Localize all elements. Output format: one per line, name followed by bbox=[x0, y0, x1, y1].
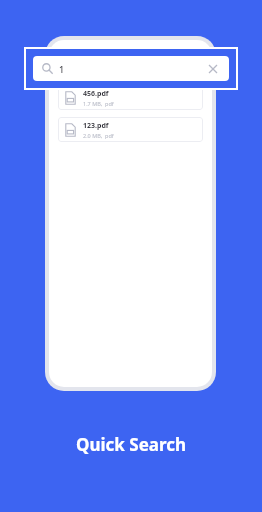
staticText: 1 bbox=[59, 63, 65, 75]
button[interactable]: Clear search bbox=[205, 61, 220, 76]
staticText: 2.0 MB, pdf bbox=[83, 132, 114, 139]
staticText: 123.pdf bbox=[83, 121, 109, 131]
button[interactable]: 123.pdf bbox=[58, 117, 203, 142]
staticText: 456.pdf bbox=[83, 89, 109, 99]
staticText: Quick Search bbox=[0, 433, 262, 456]
button[interactable]: 1 bbox=[33, 56, 229, 81]
button[interactable]: 456.pdf bbox=[58, 85, 203, 110]
staticText: 1.7 MB, pdf bbox=[83, 100, 114, 107]
